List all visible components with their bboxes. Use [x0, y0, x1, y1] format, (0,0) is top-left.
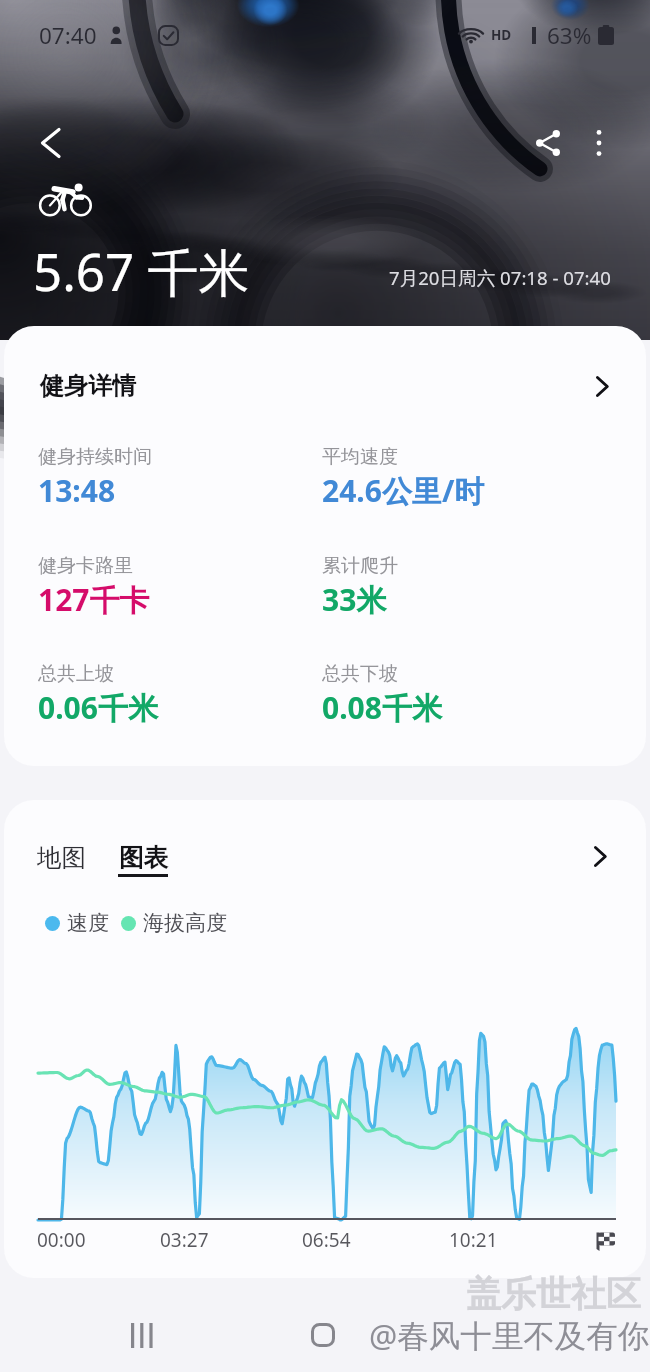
- button[interactable]: Back: [26, 119, 74, 167]
- staticText: 07:40: [39, 20, 97, 51]
- staticText: 健身卡路里: [38, 554, 133, 578]
- staticText: HD: [491, 26, 512, 44]
- button[interactable]: Share: [524, 119, 572, 167]
- button[interactable]: More options: [575, 119, 623, 167]
- staticText: 127千卡: [38, 579, 150, 620]
- button[interactable]: 健身详情: [4, 326, 646, 446]
- staticText: 海拔高度: [143, 910, 227, 936]
- staticText: 63%: [547, 20, 592, 51]
- staticText: 24.6公里/时: [322, 470, 485, 511]
- staticText: 13:48: [38, 470, 116, 511]
- button[interactable]: Open chart: [575, 832, 623, 880]
- staticText: 03:27: [160, 1227, 209, 1253]
- staticText: 33米: [322, 579, 387, 620]
- staticText: 总共上坡: [38, 662, 114, 686]
- staticText: 累计爬升: [322, 554, 398, 578]
- staticText: 06:54: [302, 1227, 351, 1253]
- staticText: 平均速度: [322, 445, 398, 469]
- button[interactable]: 地图: [24, 834, 99, 881]
- staticText: 健身详情: [40, 371, 136, 401]
- staticText: 5.67 千米: [33, 236, 250, 306]
- staticText: 图表: [119, 842, 168, 873]
- staticText: 地图: [37, 842, 86, 873]
- staticText: 总共下坡: [322, 662, 398, 686]
- staticText: 0.06千米: [38, 687, 158, 728]
- staticText: 速度: [67, 910, 109, 936]
- staticText: 10:21: [449, 1227, 498, 1253]
- staticText: 健身持续时间: [38, 445, 152, 469]
- staticText: 00:00: [37, 1227, 86, 1253]
- staticText: 7月20日周六 07:18 - 07:40: [389, 265, 611, 290]
- button[interactable]: 图表: [105, 834, 181, 885]
- staticText: 0.08千米: [322, 687, 442, 728]
- button[interactable]: Recents: [97, 1306, 187, 1364]
- staticText: @春风十里不及有你: [369, 1313, 650, 1356]
- button[interactable]: Home: [278, 1306, 368, 1364]
- staticText: 盖乐世社区: [466, 1272, 641, 1316]
